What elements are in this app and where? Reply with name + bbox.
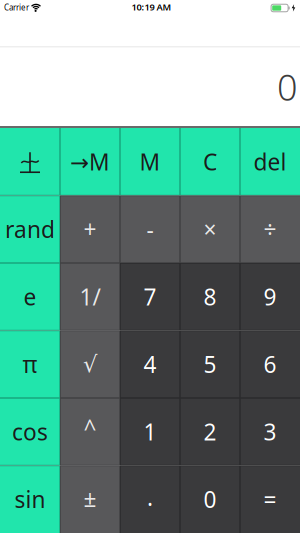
button[interactable]: ^ bbox=[60, 398, 120, 465]
button[interactable]: del bbox=[240, 128, 300, 195]
button[interactable]: →M bbox=[60, 128, 120, 195]
button[interactable]: 6 bbox=[240, 330, 300, 398]
staticText: π bbox=[22, 349, 37, 379]
staticText: - bbox=[146, 214, 153, 244]
button[interactable]: ÷ bbox=[240, 195, 300, 263]
button[interactable]: 9 bbox=[240, 263, 300, 330]
button[interactable]: rand bbox=[0, 195, 60, 263]
button[interactable]: × bbox=[180, 195, 240, 263]
button[interactable]: M bbox=[120, 128, 180, 195]
button[interactable]: 3 bbox=[240, 398, 300, 465]
staticText: 0 bbox=[203, 484, 216, 514]
staticText: →M bbox=[70, 147, 110, 177]
staticText: 10:19 AM bbox=[131, 1, 171, 13]
button[interactable]: Ground bbox=[0, 128, 60, 195]
staticText: 7 bbox=[143, 282, 156, 312]
staticText: ÷ bbox=[263, 214, 276, 244]
button[interactable]: ± bbox=[60, 465, 120, 533]
staticText: 1/ bbox=[79, 282, 100, 312]
staticText: = bbox=[263, 484, 276, 514]
button[interactable]: √ bbox=[60, 330, 120, 398]
staticText: 0 bbox=[277, 63, 298, 111]
staticText: e bbox=[23, 282, 36, 312]
button[interactable]: 1/ bbox=[60, 263, 120, 330]
staticText: del bbox=[253, 147, 286, 177]
staticText: . bbox=[147, 482, 153, 512]
staticText: sin bbox=[14, 484, 45, 514]
button[interactable]: 7 bbox=[120, 263, 180, 330]
button[interactable]: 1 bbox=[120, 398, 180, 465]
button[interactable]: 8 bbox=[180, 263, 240, 330]
staticText: Carrier bbox=[4, 2, 29, 13]
button[interactable]: cos bbox=[0, 398, 60, 465]
staticText: 3 bbox=[263, 417, 276, 447]
staticText: C bbox=[203, 147, 217, 177]
button[interactable]: . bbox=[120, 465, 180, 533]
staticText: M bbox=[139, 147, 160, 177]
staticText: + bbox=[83, 214, 96, 244]
button[interactable]: - bbox=[120, 195, 180, 263]
staticText: 6 bbox=[263, 349, 276, 379]
staticText: cos bbox=[12, 417, 48, 447]
button[interactable]: 0 bbox=[180, 465, 240, 533]
button[interactable]: 4 bbox=[120, 330, 180, 398]
staticText: 8 bbox=[203, 282, 216, 312]
staticText: rand bbox=[5, 214, 55, 244]
button[interactable]: π bbox=[0, 330, 60, 398]
button[interactable]: e bbox=[0, 263, 60, 330]
staticText: √ bbox=[83, 351, 97, 377]
staticText: × bbox=[203, 214, 216, 244]
button[interactable]: 5 bbox=[180, 330, 240, 398]
staticText: 9 bbox=[263, 282, 276, 312]
button[interactable]: = bbox=[240, 465, 300, 533]
staticText: 1 bbox=[143, 417, 156, 447]
button[interactable]: C bbox=[180, 128, 240, 195]
staticText: ± bbox=[83, 483, 96, 513]
staticText: 5 bbox=[203, 349, 216, 379]
button[interactable]: + bbox=[60, 195, 120, 263]
staticText: 2 bbox=[203, 417, 216, 447]
staticText: 4 bbox=[143, 349, 156, 379]
button[interactable]: 2 bbox=[180, 398, 240, 465]
button[interactable]: sin bbox=[0, 465, 60, 533]
staticText: ^ bbox=[83, 413, 96, 443]
